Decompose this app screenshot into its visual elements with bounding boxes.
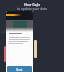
button[interactable]: Next (6, 11, 33, 72)
staticText: to update your data (17, 7, 47, 11)
button[interactable]: Next (7, 66, 32, 72)
staticText: How GoJo (24, 2, 40, 7)
button[interactable]: Next card (34, 40, 37, 58)
button[interactable]: Previous card (4, 46, 6, 62)
staticText: Next (16, 68, 23, 72)
